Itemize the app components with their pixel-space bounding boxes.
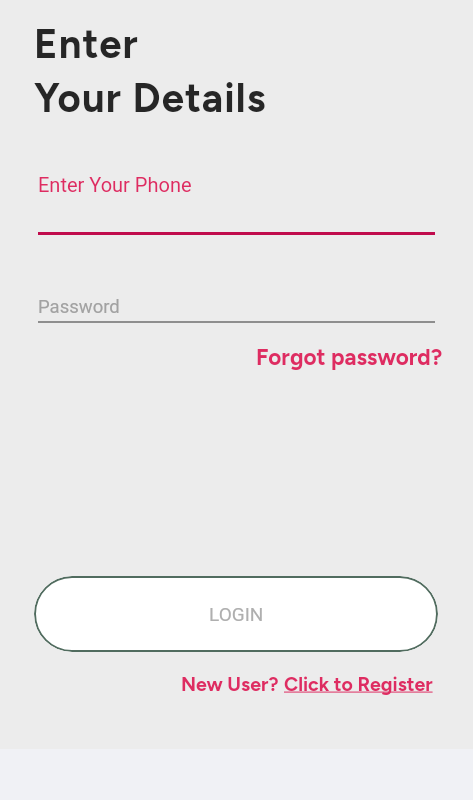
staticText: LOGIN xyxy=(209,603,264,625)
button[interactable]: Click to Register xyxy=(284,672,433,695)
staticText: New User? xyxy=(181,672,284,695)
staticText: Password xyxy=(38,296,120,318)
button[interactable]: Forgot password? xyxy=(256,344,443,371)
button[interactable]: Password xyxy=(38,296,435,323)
staticText: Enter Your Phone xyxy=(38,173,192,196)
staticText: Enter Your Details xyxy=(34,20,267,122)
button[interactable]: Enter Your Phone xyxy=(38,173,435,235)
button[interactable]: LOGIN xyxy=(34,576,438,652)
